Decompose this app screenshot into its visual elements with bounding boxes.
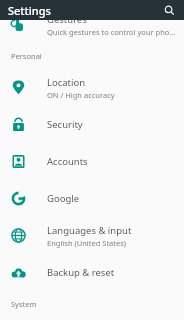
staticText: Google [47,192,80,205]
staticText: English (United States) [47,238,127,248]
staticText: ON / High accuracy [47,90,115,100]
button[interactable]: Location [0,69,184,106]
staticText: Gestures [47,13,87,26]
staticText: Backup & reset [47,266,115,279]
button[interactable]: Accounts [0,143,184,180]
button[interactable]: Backup & reset [0,254,184,291]
button[interactable]: Google [0,180,184,217]
button[interactable]: Search [160,1,178,19]
button[interactable]: Security [0,106,184,143]
staticText: Languages & input [47,224,132,237]
staticText: Security [47,118,83,131]
staticText: Location [47,76,86,89]
staticText: Personal [11,51,42,61]
staticText: Quick gestures to control your phone [47,27,176,37]
button[interactable]: Languages & input [0,217,184,254]
staticText: Settings [8,3,51,18]
button[interactable]: Gestures [0,6,184,43]
staticText: System [11,299,37,309]
staticText: Accounts [47,155,88,168]
